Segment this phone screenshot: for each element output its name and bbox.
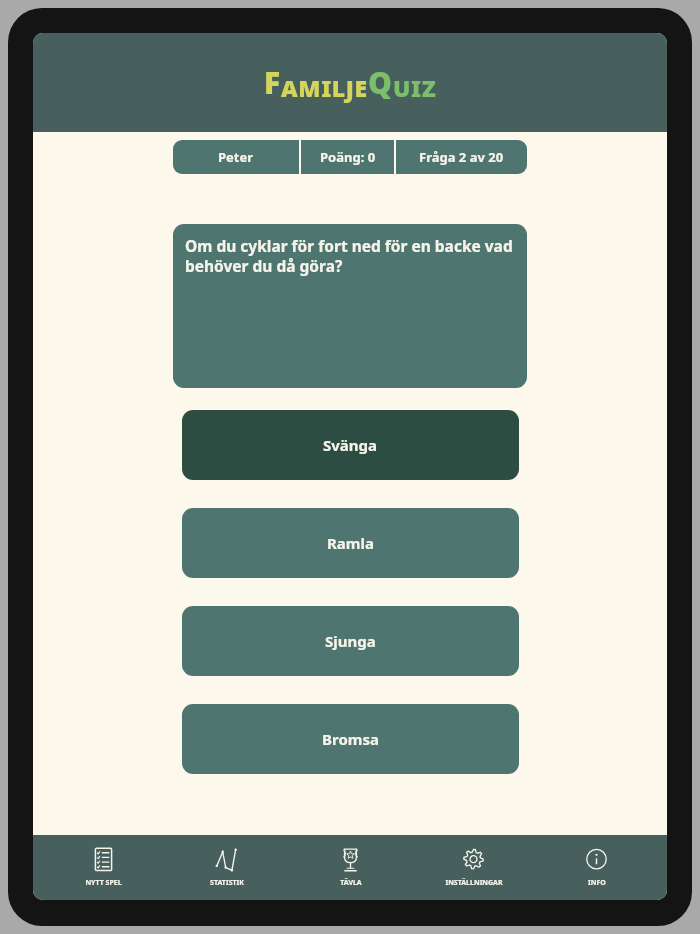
staticText: UIZ — [393, 72, 437, 103]
staticText: Om du cyklar för fort ned för en backe v… — [185, 235, 515, 277]
button[interactable]: Statistics — [174, 835, 279, 900]
staticText: AMILJE — [281, 72, 368, 103]
staticText: Svänga — [323, 435, 378, 455]
staticText: Poäng: 0 — [320, 148, 376, 166]
button[interactable]: Bromsa — [182, 704, 519, 774]
staticText: Sjunga — [325, 631, 376, 651]
staticText: Bromsa — [322, 729, 379, 749]
button[interactable]: Settings — [421, 835, 526, 900]
button[interactable]: Compete — [298, 835, 403, 900]
staticText: Peter — [218, 148, 254, 166]
staticText: STATISTIK — [210, 878, 244, 888]
staticText: Fråga 2 av 20 — [419, 148, 504, 166]
button[interactable]: Poäng: 0 — [301, 140, 394, 174]
button[interactable]: Om du cyklar för fort ned för en backe v… — [173, 224, 527, 388]
staticText: Q — [368, 62, 393, 103]
staticText: INFO — [588, 878, 606, 888]
staticText: TÄVLA — [340, 878, 362, 888]
button[interactable]: New game — [51, 835, 156, 900]
staticText: NYTT SPEL — [85, 878, 122, 888]
button[interactable]: Peter — [173, 140, 299, 174]
button[interactable]: Fråga 2 av 20 — [396, 140, 527, 174]
button[interactable]: Info — [544, 835, 649, 900]
staticText: Ramla — [327, 533, 374, 553]
button[interactable]: Sjunga — [182, 606, 519, 676]
button[interactable]: Svänga — [182, 410, 519, 480]
button[interactable]: Ramla — [182, 508, 519, 578]
staticText: INSTÄLLNINGAR — [445, 878, 503, 888]
staticText: F — [264, 62, 281, 103]
